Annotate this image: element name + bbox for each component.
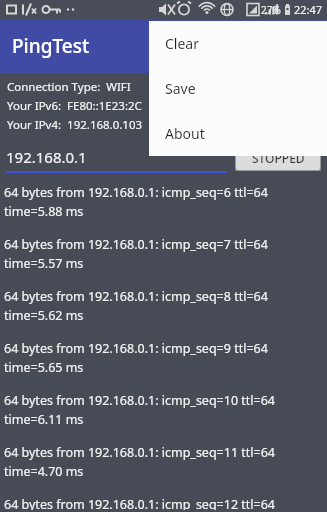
staticText: 64 bytes from 192.168.0.1: icmp_seq=9 tt… <box>4 340 268 357</box>
staticText: Your IPv6: FE80::1E23:2C <box>7 98 142 114</box>
button[interactable]: Clear <box>149 21 327 66</box>
button[interactable]: 192.168.0.1 <box>6 147 227 173</box>
staticText: 27% <box>261 3 281 17</box>
staticText: time=6.11 ms <box>4 411 84 428</box>
staticText: PingTest <box>12 33 90 59</box>
staticText: Clear <box>165 34 199 53</box>
staticText: About <box>165 124 205 143</box>
button[interactable]: PingTest <box>0 19 327 73</box>
staticText: Save <box>165 79 196 98</box>
button[interactable]: Save <box>149 66 327 111</box>
staticText: 64 bytes from 192.168.0.1: icmp_seq=8 tt… <box>4 288 268 305</box>
staticText: time=5.88 ms <box>4 203 84 220</box>
staticText: 22:47 <box>294 2 323 17</box>
staticText: STOPPED <box>252 150 305 166</box>
staticText: Connection Type: WIFI <box>7 79 131 95</box>
staticText: time=5.65 ms <box>4 359 84 376</box>
staticText: 64 bytes from 192.168.0.1: icmp_seq=11 t… <box>4 444 276 461</box>
staticText: time=5.57 ms <box>4 255 84 272</box>
button[interactable]: STOPPED <box>236 145 320 170</box>
staticText: 64 bytes from 192.168.0.1: icmp_seq=6 tt… <box>4 184 268 201</box>
staticText: Your IPv4: 192.168.0.103 <box>7 117 143 133</box>
staticText: 64 bytes from 192.168.0.1: icmp_seq=7 tt… <box>4 236 268 253</box>
button[interactable]: About <box>149 111 327 156</box>
staticText: 64 bytes from 192.168.0.1: icmp_seq=10 t… <box>4 392 276 409</box>
staticText: 192.168.0.1 <box>6 147 87 167</box>
staticText: 64 bytes from 192.168.0.1: icmp_seq=12 t… <box>4 496 276 510</box>
staticText: time=5.62 ms <box>4 307 84 324</box>
staticText: time=4.70 ms <box>4 463 84 480</box>
